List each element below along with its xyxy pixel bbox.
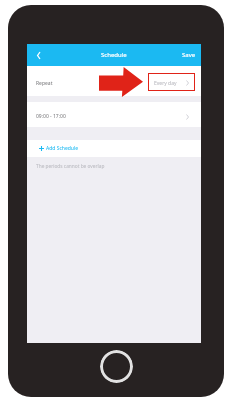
button[interactable]: 09:00 - 17:00 <box>36 102 189 127</box>
staticText: Save <box>182 51 196 59</box>
button[interactable]: Repeat <box>36 66 189 96</box>
staticText: Repeat <box>36 80 53 87</box>
button[interactable]: Add Schedule <box>39 140 189 157</box>
button[interactable]: Back <box>27 44 49 66</box>
button[interactable]: Save <box>182 44 196 66</box>
staticText: The periods cannot be overlap <box>36 163 105 170</box>
button[interactable]: Home <box>100 350 133 383</box>
staticText: Add Schedule <box>46 145 78 152</box>
staticText: 09:00 - 17:00 <box>36 113 66 120</box>
staticText: Schedule <box>101 51 127 59</box>
staticText: Every day <box>154 80 177 87</box>
